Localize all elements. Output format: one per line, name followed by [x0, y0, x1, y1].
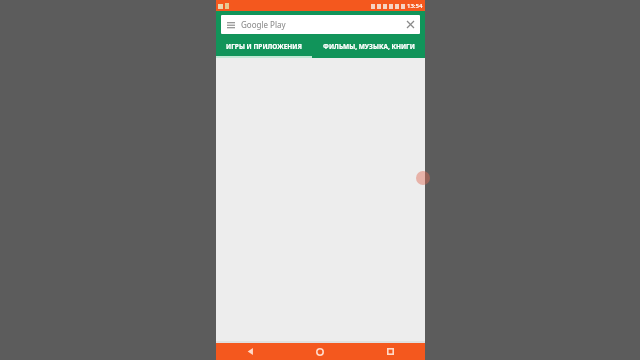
staticText: 13:54	[407, 2, 423, 10]
staticText: Google Play	[241, 19, 286, 30]
button[interactable]: ИГРЫ И ПРИЛОЖЕНИЯ	[216, 37, 312, 56]
button[interactable]: Home	[285, 343, 355, 360]
button[interactable]: Menu	[221, 15, 420, 34]
button[interactable]: Back	[216, 343, 285, 360]
button[interactable]: ФИЛЬМЫ, МУЗЫКА, КНИГИ	[312, 37, 425, 56]
staticText: ФИЛЬМЫ, МУЗЫКА, КНИГИ	[323, 42, 415, 51]
staticText: ИГРЫ И ПРИЛОЖЕНИЯ	[226, 42, 302, 51]
other: Menu	[227, 21, 235, 29]
button[interactable]: Recents	[355, 343, 425, 360]
other: Clear	[407, 21, 414, 28]
